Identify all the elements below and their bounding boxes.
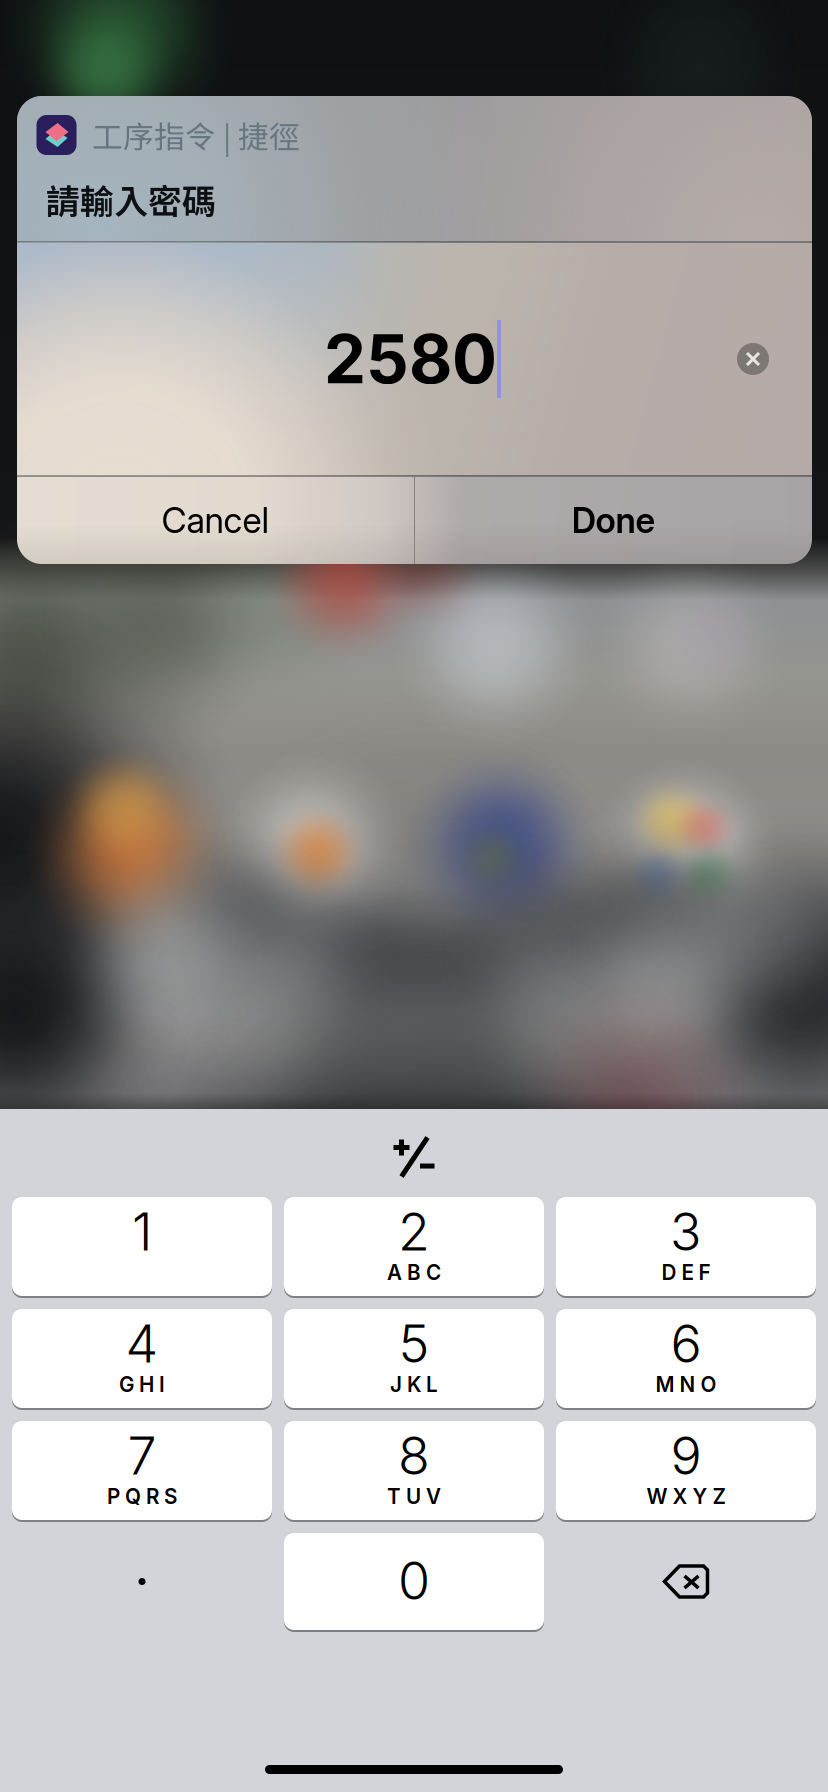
staticText: 1: [132, 1200, 152, 1263]
staticText: D E F: [661, 1260, 710, 1285]
button[interactable]: 2: [284, 1197, 544, 1296]
staticText: 工序指令 | 捷徑: [92, 113, 300, 157]
staticText: T U V: [387, 1484, 441, 1509]
staticText: 0: [398, 1549, 430, 1612]
button[interactable]: Clear text: [729, 335, 777, 383]
button[interactable]: Delete: [556, 1533, 816, 1630]
staticText: 6: [670, 1312, 701, 1375]
staticText: Cancel: [161, 499, 269, 541]
staticText: 2580: [324, 319, 497, 399]
button[interactable]: Done: [415, 476, 812, 564]
button[interactable]: 8: [284, 1421, 544, 1520]
button[interactable]: 7: [12, 1421, 272, 1520]
staticText: Done: [571, 499, 655, 541]
staticText: G H I: [119, 1372, 165, 1397]
staticText: P Q R S: [107, 1484, 177, 1509]
staticText: W X Y Z: [646, 1484, 725, 1509]
button[interactable]: Cancel: [17, 476, 414, 564]
staticText: J K L: [390, 1372, 438, 1397]
button[interactable]: 1: [12, 1197, 272, 1296]
button[interactable]: 3: [556, 1197, 816, 1296]
staticText: 8: [398, 1424, 430, 1487]
staticText: 2: [398, 1200, 430, 1263]
staticText: A B C: [387, 1260, 441, 1285]
button[interactable]: Decimal point: [12, 1533, 272, 1630]
staticText: 5: [398, 1312, 429, 1375]
staticText: M N O: [655, 1372, 716, 1397]
button[interactable]: 4: [12, 1309, 272, 1408]
staticText: 3: [670, 1200, 702, 1263]
button[interactable]: Plus minus: [354, 1130, 474, 1184]
staticText: 7: [127, 1424, 156, 1487]
button[interactable]: 9: [556, 1421, 816, 1520]
button[interactable]: 6: [556, 1309, 816, 1408]
staticText: 9: [670, 1424, 701, 1487]
button[interactable]: 0: [284, 1533, 544, 1630]
staticText: 請輸入密碼: [46, 174, 216, 224]
staticText: 4: [125, 1312, 158, 1375]
button[interactable]: 5: [284, 1309, 544, 1408]
